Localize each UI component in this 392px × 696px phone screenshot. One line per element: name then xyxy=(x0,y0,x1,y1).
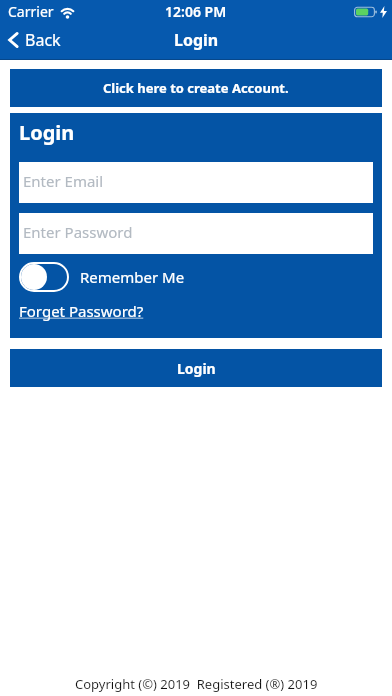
staticText: Enter Password xyxy=(23,222,133,242)
button[interactable]: Remember Me xyxy=(19,262,185,292)
button[interactable]: Enter Email xyxy=(19,162,373,203)
button[interactable]: Enter Password xyxy=(19,213,373,254)
staticText: Login xyxy=(19,119,75,146)
staticText: Remember Me xyxy=(80,267,185,287)
button[interactable]: Back xyxy=(8,29,61,51)
button[interactable]: Click here to create Account. xyxy=(10,69,382,107)
staticText: Carrier xyxy=(8,2,54,21)
staticText: Click here to create Account. xyxy=(103,79,289,97)
staticText: Login xyxy=(174,29,219,51)
button[interactable]: Login xyxy=(10,349,382,387)
staticText: Copyright (©) 2019 Registered (®) 2019 xyxy=(75,675,318,693)
staticText: Login xyxy=(177,359,216,378)
button[interactable]: Forget Password? xyxy=(19,301,144,321)
staticText: 12:06 PM xyxy=(165,2,227,21)
staticText: Enter Email xyxy=(23,171,104,191)
staticText: Back xyxy=(25,29,61,51)
